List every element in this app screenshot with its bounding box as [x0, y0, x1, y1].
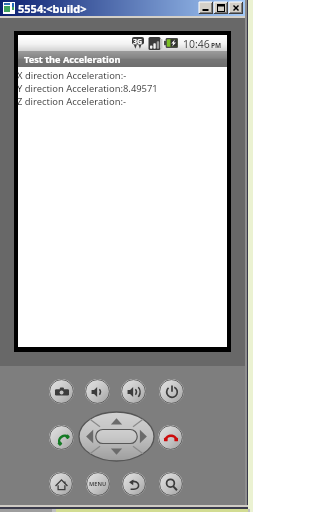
button[interactable]: Back	[122, 472, 146, 496]
button[interactable]: Maximize	[214, 2, 228, 14]
button[interactable]: Volume down	[85, 379, 110, 404]
staticText: 5554:<build>	[18, 1, 87, 16]
button[interactable]: Close	[229, 2, 243, 14]
staticText: Test the Acceleration	[24, 53, 121, 66]
button[interactable]: Power	[159, 379, 184, 404]
button[interactable]: Volume up	[121, 379, 146, 404]
button[interactable]: Home	[49, 472, 73, 496]
button[interactable]: Direction pad	[79, 412, 154, 461]
staticText: Y direction Acceleration:8.49571	[17, 82, 158, 95]
button[interactable]: Minimize	[199, 2, 213, 14]
button[interactable]: Search	[159, 472, 183, 496]
button[interactable]: Menu	[86, 472, 110, 496]
button[interactable]: End call	[158, 425, 183, 450]
staticText: 10:46	[183, 37, 210, 51]
button[interactable]: Call	[49, 425, 74, 450]
staticText: PM	[211, 41, 222, 50]
button[interactable]: Camera	[49, 379, 74, 404]
staticText: X direction Acceleration:-	[17, 69, 127, 82]
staticText: 3G	[133, 37, 143, 47]
staticText: MENU	[89, 480, 107, 488]
staticText: Z direction Acceleration:-	[17, 95, 127, 108]
